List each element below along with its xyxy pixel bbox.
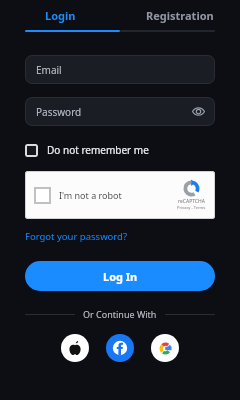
button[interactable]: Sign in with Apple — [61, 334, 89, 362]
staticText: I'm not a robot — [59, 189, 122, 201]
button[interactable]: Forgot your password? — [25, 230, 128, 243]
button[interactable]: Sign in with Facebook — [106, 334, 134, 362]
button[interactable]: Login — [0, 0, 120, 30]
button[interactable]: Log In — [25, 261, 215, 291]
staticText: Do not remember me — [47, 143, 149, 157]
staticText: Email — [36, 63, 62, 77]
staticText: Password — [36, 105, 82, 119]
button[interactable]: Registration — [120, 0, 240, 30]
button[interactable]: Password — [25, 97, 215, 126]
staticText: Registration — [146, 8, 214, 23]
staticText: Log In — [103, 269, 138, 284]
staticText: Forgot your password? — [25, 230, 128, 243]
button[interactable]: Sign in with Google — [151, 334, 179, 362]
button[interactable]: Email — [25, 55, 215, 84]
button[interactable]: I'm not a robot — [25, 171, 215, 219]
staticText: Or Continue With — [83, 308, 157, 320]
button[interactable]: Do not remember me — [25, 140, 149, 160]
staticText: Privacy - Terms — [177, 205, 206, 210]
staticText: Login — [45, 8, 76, 23]
staticText: reCAPTCHA — [178, 198, 205, 205]
